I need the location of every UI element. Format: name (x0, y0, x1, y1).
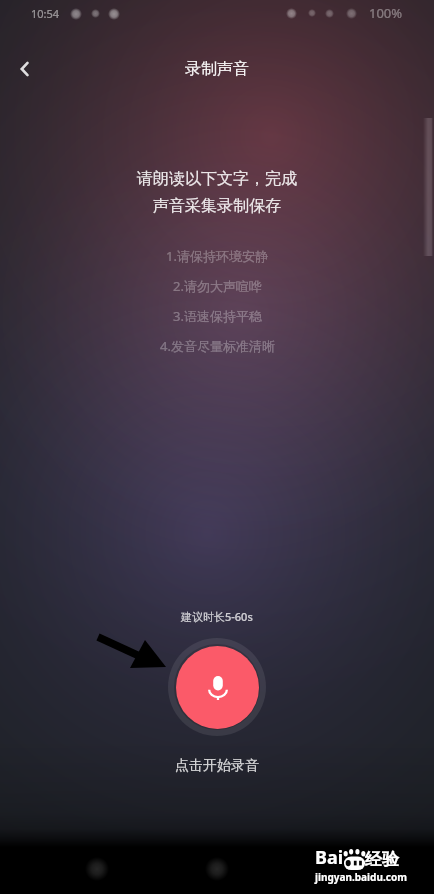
button[interactable]: Start recording (176, 646, 259, 729)
staticText: 2.请勿大声喧哗 (173, 277, 262, 295)
staticText: Bai (315, 845, 344, 870)
staticText: 录制声音 (185, 59, 249, 79)
staticText: 10:54 (31, 6, 60, 21)
button[interactable]: Recents (77, 849, 117, 889)
button[interactable]: Home (197, 849, 237, 889)
staticText: jingyan.baidu.com (315, 870, 407, 884)
button[interactable]: Back (4, 48, 46, 90)
staticText: 3.语速保持平稳 (173, 307, 262, 325)
staticText: 4.发音尽量标准清晰 (160, 337, 275, 355)
staticText: 建议时长5-60s (181, 609, 253, 624)
staticText: 100% (369, 4, 403, 22)
staticText: 经验 (365, 849, 399, 870)
staticText: 请朗读以下文字，完成 声音采集录制保存 (137, 169, 297, 216)
staticText: 点击开始录音 (175, 757, 259, 775)
staticText: 1.请保持环境安静 (166, 247, 268, 265)
